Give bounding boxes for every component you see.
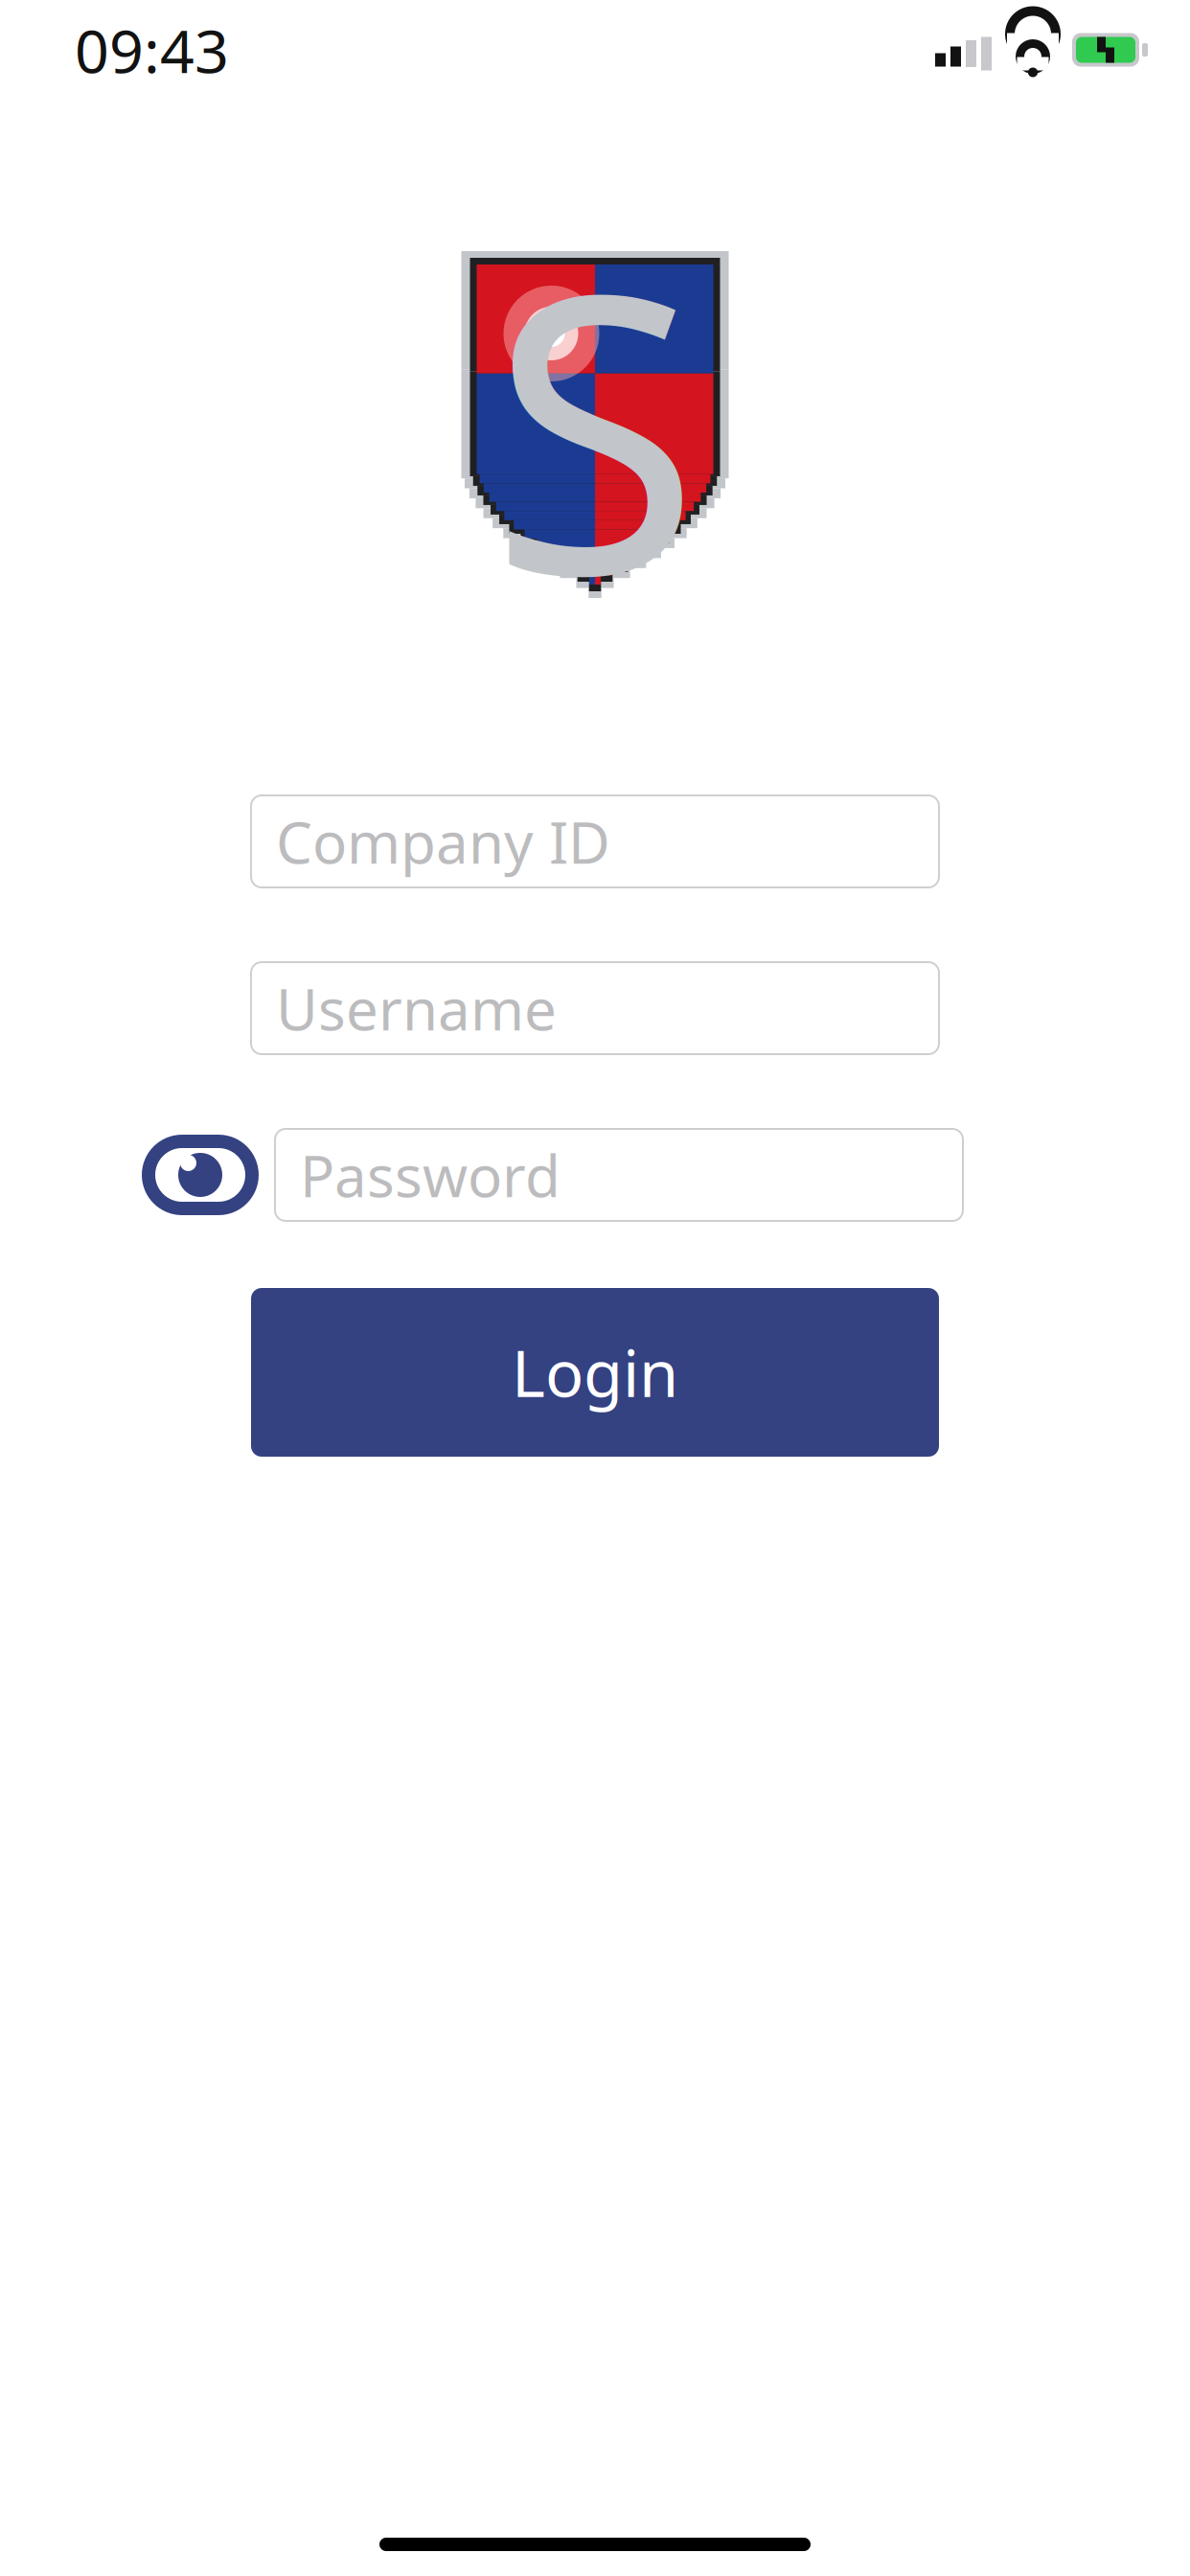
staticText: S xyxy=(490,170,700,679)
button[interactable]: Password xyxy=(275,1129,963,1221)
staticText: 09:43 xyxy=(75,10,229,90)
button[interactable]: Login xyxy=(251,1288,939,1457)
button[interactable]: Username xyxy=(251,962,939,1054)
staticText: Username xyxy=(276,970,557,1046)
button[interactable]: Show password xyxy=(126,1129,275,1221)
staticText: Password xyxy=(300,1137,561,1213)
staticText: Company ID xyxy=(276,803,610,880)
staticText: Login xyxy=(512,1330,678,1415)
button[interactable]: Company ID xyxy=(251,795,939,887)
